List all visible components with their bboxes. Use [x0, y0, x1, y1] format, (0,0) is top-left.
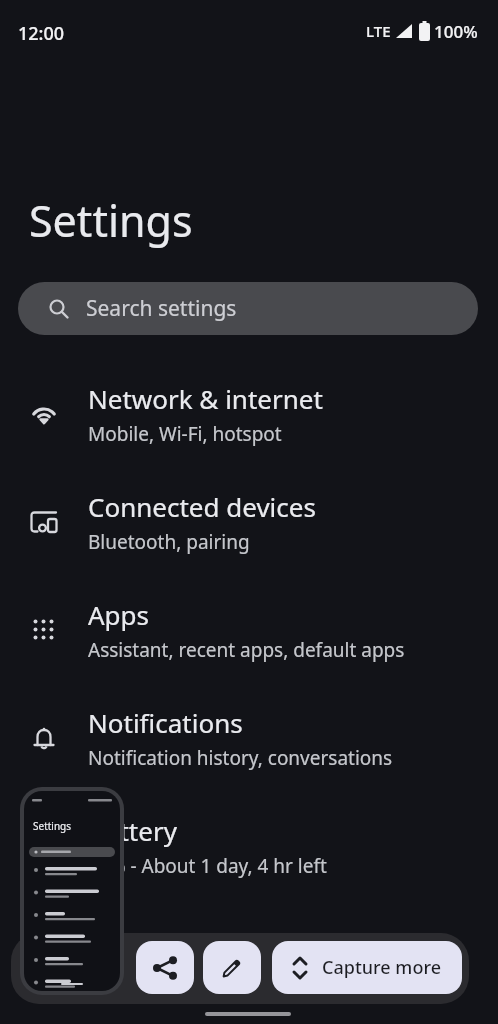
staticText: Mobile, Wi-Fi, hotspot [88, 421, 282, 447]
staticText: Assistant, recent apps, default apps [88, 637, 405, 663]
button[interactable]: Notifications [0, 684, 498, 792]
button[interactable]: Capture more [272, 941, 462, 994]
button[interactable]: Apps [0, 576, 498, 684]
staticText: Settings [29, 191, 193, 250]
button[interactable] [136, 941, 194, 994]
staticText: Settings [33, 819, 72, 833]
staticText: 12:00 [18, 21, 65, 46]
button[interactable] [203, 941, 261, 994]
button[interactable]: Settings [20, 787, 124, 995]
staticText: Battery [88, 813, 177, 848]
staticText: Bluetooth, pairing [88, 529, 250, 555]
staticText: Search settings [86, 294, 237, 323]
button[interactable]: Connected devices [0, 468, 498, 576]
staticText: Notifications [88, 705, 243, 740]
staticText: Capture more [322, 955, 441, 980]
button[interactable]: Search settings [18, 282, 478, 335]
staticText: Apps [88, 597, 150, 632]
staticText: 86% - About 1 day, 4 hr left [88, 853, 327, 879]
staticText: 100% [434, 20, 478, 43]
staticText: Connected devices [88, 489, 316, 524]
staticText: Notification history, conversations [88, 745, 393, 771]
staticText: Network & internet [88, 381, 323, 416]
button[interactable]: Network & internet [0, 360, 498, 468]
staticText: LTE [366, 21, 391, 41]
button[interactable]: Battery [0, 792, 498, 900]
